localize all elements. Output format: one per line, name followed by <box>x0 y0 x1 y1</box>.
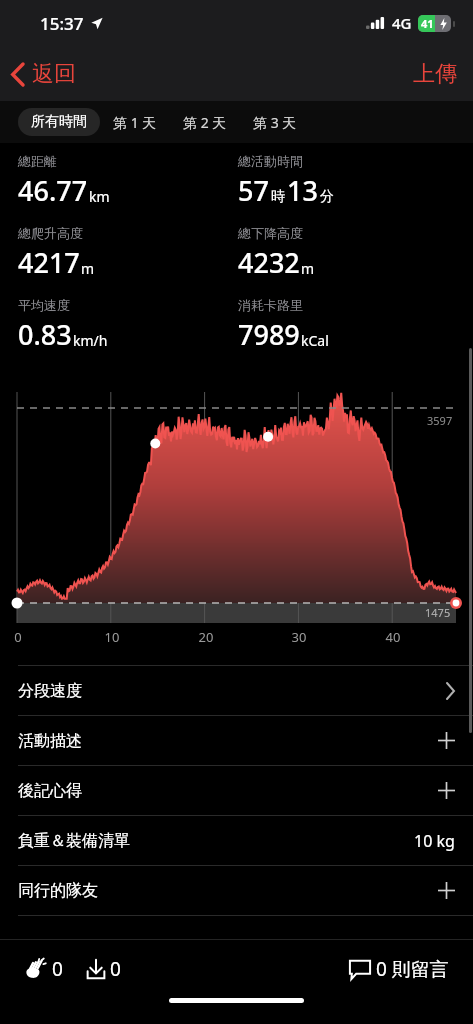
staticText: 總距離 <box>18 153 57 169</box>
staticText: 57 <box>238 172 269 209</box>
staticText: 20 <box>196 628 216 646</box>
staticText: m <box>301 259 315 278</box>
staticText: 總下降高度 <box>238 225 303 241</box>
staticText: 15:37 <box>40 12 84 35</box>
button[interactable]: 活動描述 <box>0 716 473 765</box>
staticText: 0 則留言 <box>376 956 449 982</box>
staticText: 總爬升高度 <box>18 225 83 241</box>
staticText: 3597 <box>427 413 453 428</box>
button[interactable]: 後記心得 <box>0 766 473 815</box>
staticText: 30 <box>289 628 309 646</box>
staticText: 負重＆裝備清單 <box>18 831 130 851</box>
button[interactable]: 分段速度 <box>0 666 473 715</box>
staticText: 後記心得 <box>18 781 82 801</box>
button[interactable]: 所有時間 <box>18 108 100 136</box>
staticText: 41 <box>421 16 434 31</box>
other: Comments <box>348 957 372 981</box>
button[interactable]: Download <box>83 948 123 990</box>
staticText: 0.83 <box>18 316 72 353</box>
button[interactable]: 第 1 天 <box>100 108 170 137</box>
button[interactable]: 上傳 <box>397 52 473 96</box>
staticText: 所有時間 <box>31 113 87 131</box>
staticText: 0 <box>8 628 28 646</box>
staticText: kCal <box>301 331 329 350</box>
staticText: 1475 <box>425 605 451 620</box>
staticText: 4G <box>392 13 412 33</box>
button[interactable]: 第 3 天 <box>240 108 310 137</box>
staticText: km <box>89 187 110 206</box>
staticText: 消耗卡路里 <box>238 297 303 313</box>
other: Add <box>438 782 455 799</box>
button[interactable]: Clap <box>22 948 65 990</box>
staticText: 第 3 天 <box>253 113 297 132</box>
staticText: 46.77 <box>18 172 88 209</box>
staticText: 0 <box>52 956 63 982</box>
staticText: 返回 <box>32 60 76 88</box>
staticText: 第 1 天 <box>113 113 157 132</box>
staticText: 40 <box>383 628 403 646</box>
staticText: 分段速度 <box>18 681 82 701</box>
button[interactable]: Comments <box>346 948 451 990</box>
staticText: 時 <box>271 188 285 206</box>
staticText: 10 kg <box>414 830 455 852</box>
staticText: 總活動時間 <box>238 153 303 169</box>
button[interactable]: 第 2 天 <box>170 108 240 137</box>
other: Clap <box>24 958 46 980</box>
other: Open <box>446 683 455 699</box>
staticText: 第 2 天 <box>183 113 227 132</box>
staticText: 活動描述 <box>18 731 82 751</box>
staticText: 分 <box>320 188 334 206</box>
other: Download <box>85 958 107 980</box>
staticText: 同行的隊友 <box>18 881 98 901</box>
button[interactable]: 負重＆裝備清單 <box>0 816 473 865</box>
other: Add <box>438 732 455 749</box>
staticText: 4217 <box>18 244 80 281</box>
staticText: 10 <box>102 628 122 646</box>
staticText: m <box>81 259 95 278</box>
staticText: 0 <box>110 956 121 982</box>
staticText: 上傳 <box>413 60 457 88</box>
button[interactable]: 同行的隊友 <box>0 866 473 915</box>
staticText: 7989 <box>238 316 300 353</box>
staticText: 平均速度 <box>18 297 70 313</box>
staticText: km/h <box>73 331 108 350</box>
other: Add <box>438 882 455 899</box>
staticText: 13 <box>287 172 318 209</box>
staticText: 4232 <box>238 244 300 281</box>
button[interactable]: 返回 <box>0 54 88 94</box>
